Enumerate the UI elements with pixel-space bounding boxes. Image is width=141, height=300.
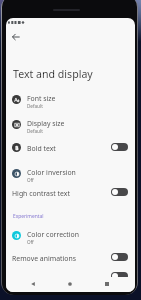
button[interactable]: High contrast text	[6, 182, 135, 204]
button[interactable]: Toggle	[111, 253, 128, 261]
staticText: Experimental	[13, 213, 44, 220]
staticText: Bold text	[27, 144, 56, 153]
button[interactable]: Toggle	[111, 272, 128, 280]
button[interactable]: Home	[63, 277, 77, 291]
staticText: Color inversion	[27, 168, 76, 177]
staticText: Font size	[27, 94, 56, 103]
staticText: Display size	[27, 119, 65, 128]
button[interactable]: Back	[8, 29, 23, 44]
staticText: Color correction	[27, 230, 80, 239]
button[interactable]: Bold text	[6, 137, 135, 159]
staticText: Remove animations	[12, 254, 77, 263]
button[interactable]: Display size	[6, 113, 135, 136]
button[interactable]: Toggle	[111, 143, 128, 151]
staticText: Off	[27, 239, 34, 245]
staticText: Default	[27, 128, 43, 134]
button[interactable]: Color correction	[6, 224, 135, 247]
button[interactable]: Recent apps	[100, 277, 114, 291]
staticText: Text and display	[13, 67, 93, 81]
staticText: High contrast text	[12, 189, 70, 198]
button[interactable]: Toggle	[111, 188, 128, 196]
staticText: Default	[27, 103, 43, 109]
button[interactable]: Remove animations	[6, 247, 135, 269]
button[interactable]: Font size	[6, 88, 135, 111]
button[interactable]: Color inversion	[6, 162, 135, 185]
staticText: Off	[27, 177, 34, 183]
button[interactable]: Back	[26, 277, 40, 291]
